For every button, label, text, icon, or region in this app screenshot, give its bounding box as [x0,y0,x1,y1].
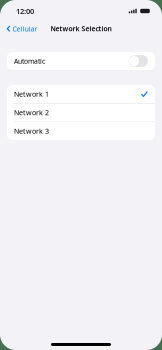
staticText: Automatic [14,56,45,66]
staticText: Network Selection [50,24,111,33]
staticText: 12:00 [16,6,34,16]
button[interactable]: Network 3 [7,122,155,140]
button[interactable]: Automatic [7,52,155,70]
staticText: Network 1 [14,89,49,99]
button[interactable]: Network 1 [7,85,155,103]
staticText: Network 2 [14,108,49,117]
button[interactable]: Network 2 [7,103,155,121]
button[interactable]: Cellular [0,22,42,35]
staticText: Network 3 [14,126,49,136]
staticText: Cellular [13,24,38,33]
